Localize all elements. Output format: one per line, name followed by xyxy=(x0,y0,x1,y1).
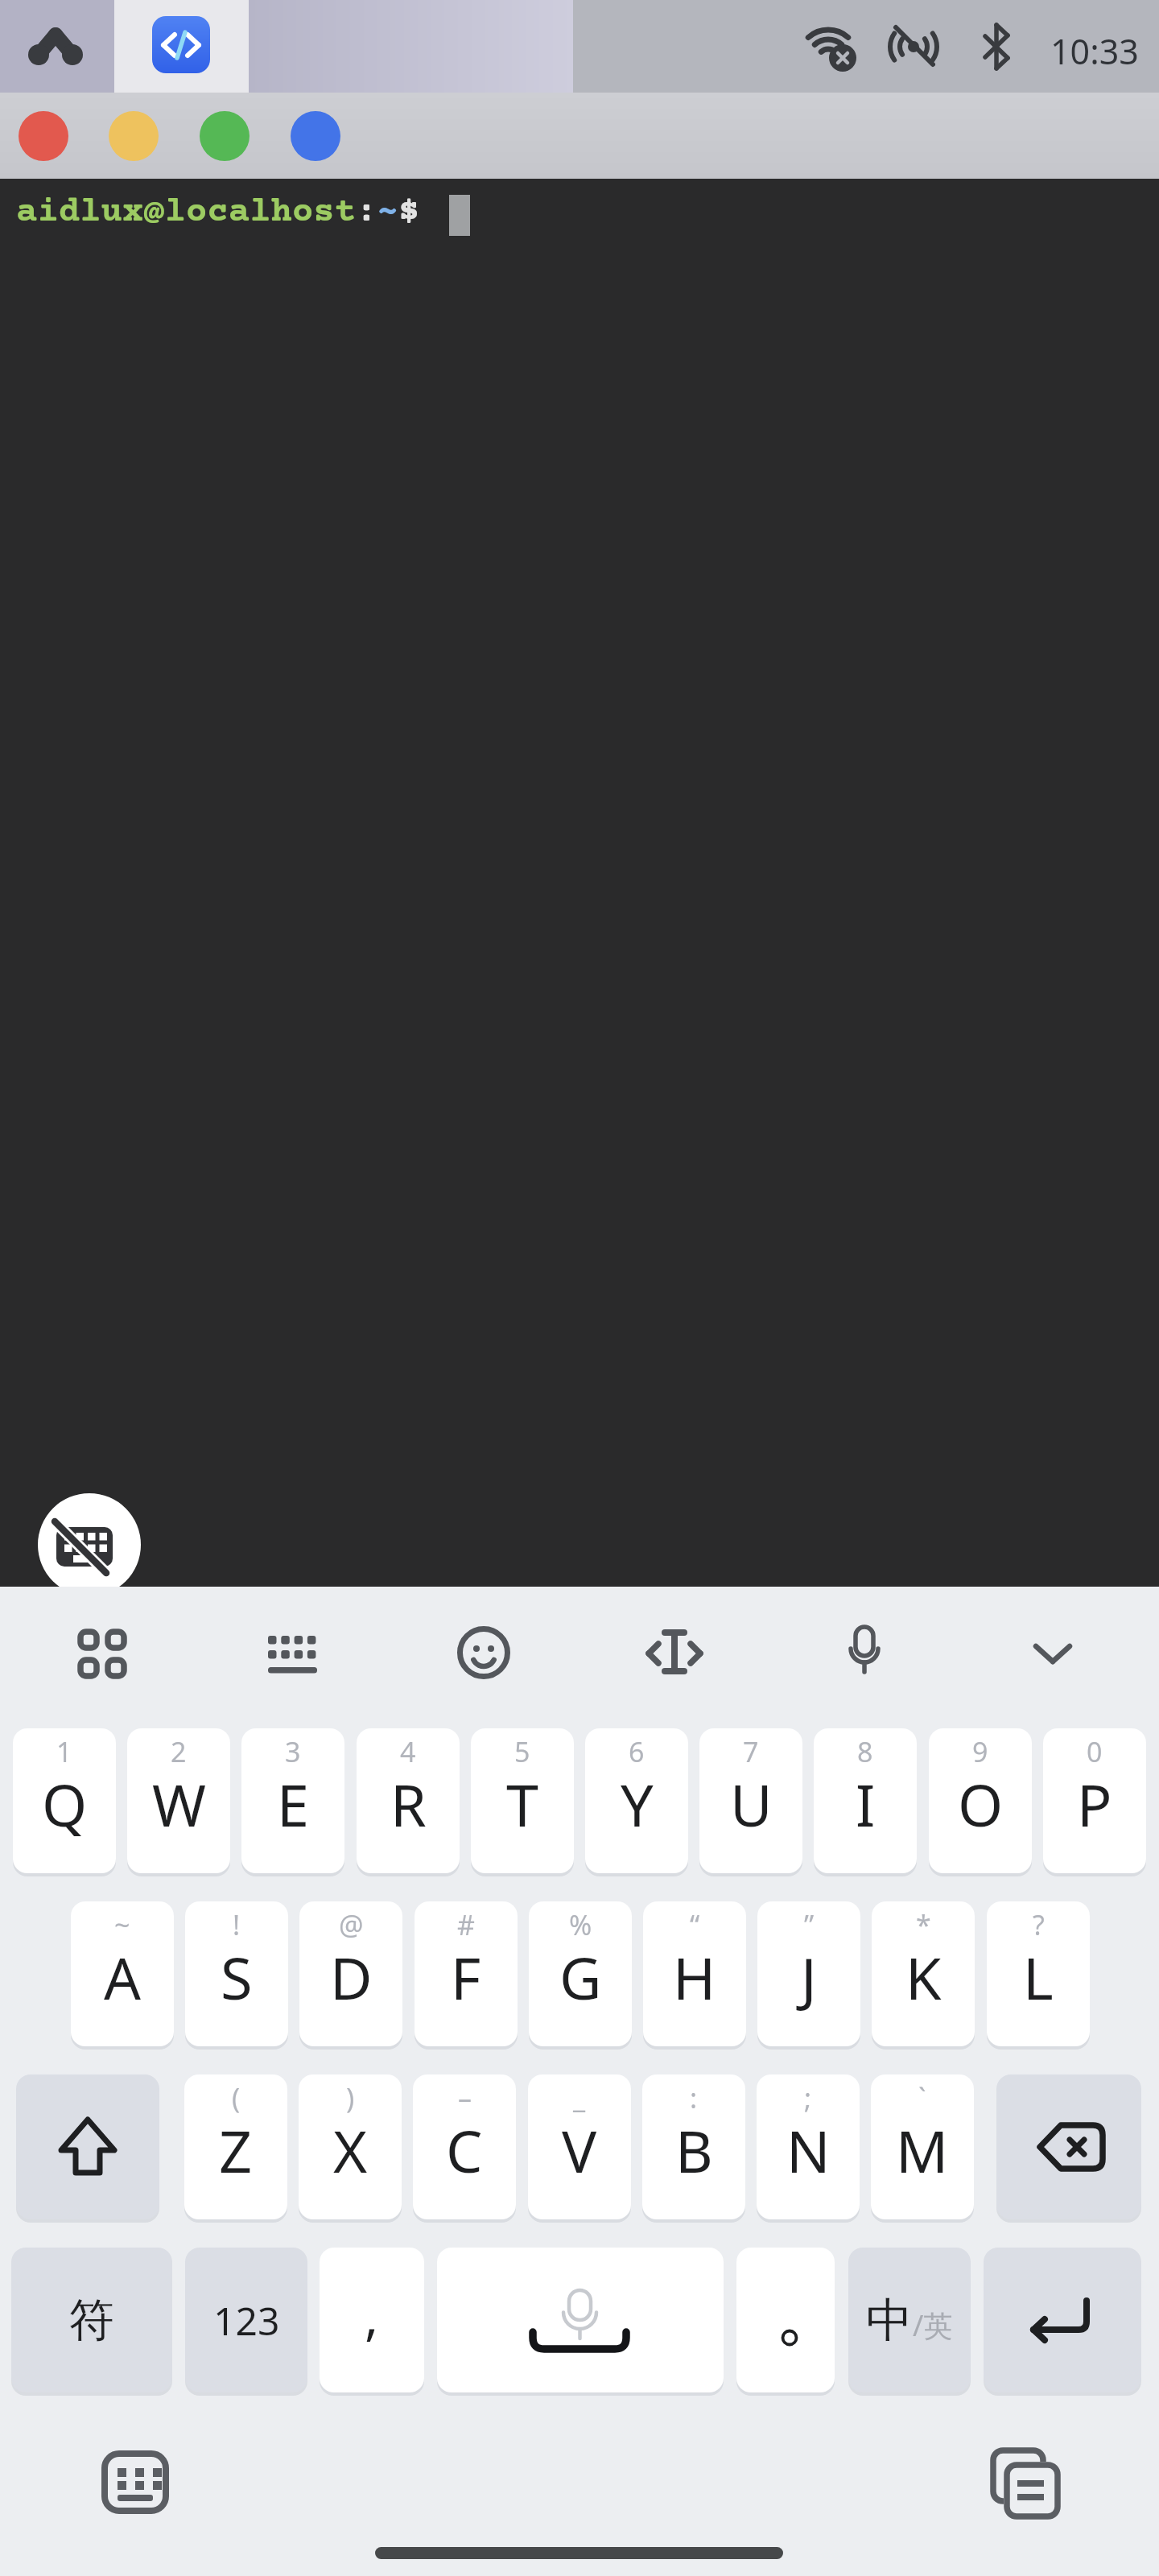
button[interactable] xyxy=(19,111,68,161)
staticText: 符 xyxy=(69,2292,114,2349)
staticText: 8 xyxy=(857,1733,873,1770)
button[interactable]: 8 xyxy=(814,1728,917,1873)
staticText: S xyxy=(221,1938,253,2017)
button[interactable]: 符 xyxy=(11,2248,172,2392)
button[interactable]: % xyxy=(529,1901,632,2046)
staticText: ; xyxy=(804,2079,812,2116)
button[interactable] xyxy=(457,1626,510,1679)
staticText: # xyxy=(457,1906,475,1943)
button[interactable]: 6 xyxy=(585,1728,688,1873)
button[interactable]: _ xyxy=(528,2074,631,2219)
staticText: * xyxy=(916,1906,931,1943)
button[interactable] xyxy=(152,16,210,73)
staticText: ? xyxy=(1033,1906,1045,1943)
button[interactable]: 4 xyxy=(357,1728,460,1873)
staticText: , xyxy=(365,2281,379,2351)
button[interactable]: # xyxy=(415,1901,518,2046)
staticText: 4 xyxy=(400,1733,416,1770)
staticText: ( xyxy=(232,2079,241,2116)
button[interactable] xyxy=(291,111,340,161)
staticText: ” xyxy=(804,1906,815,1943)
button[interactable]: * xyxy=(872,1901,975,2046)
button[interactable]: 中/英 xyxy=(848,2248,971,2392)
staticText: ! xyxy=(233,1906,241,1943)
staticText: _ xyxy=(573,2079,586,2116)
staticText: “ xyxy=(690,1906,700,1943)
staticText: M xyxy=(896,2111,949,2190)
button[interactable]: – xyxy=(413,2074,516,2219)
button[interactable]: 2 xyxy=(127,1728,230,1873)
staticText: 2 xyxy=(171,1733,187,1770)
button[interactable]: , xyxy=(320,2248,424,2392)
staticText: T xyxy=(506,1765,539,1843)
button[interactable] xyxy=(200,111,250,161)
staticText: B xyxy=(675,2111,713,2190)
button[interactable]: ? xyxy=(987,1901,1090,2046)
staticText: 5 xyxy=(514,1733,530,1770)
button[interactable]: : xyxy=(642,2074,745,2219)
button[interactable]: 5 xyxy=(471,1728,574,1873)
staticText: L xyxy=(1023,1938,1054,2017)
button[interactable]: 1 xyxy=(13,1728,116,1873)
button[interactable]: 0 xyxy=(1043,1728,1146,1873)
button[interactable]: ! xyxy=(185,1901,288,2046)
button[interactable]: ) xyxy=(299,2074,402,2219)
button[interactable] xyxy=(38,1493,141,1596)
button[interactable]: 3 xyxy=(241,1728,344,1873)
button[interactable] xyxy=(736,2248,835,2392)
staticText: K xyxy=(905,1938,942,2017)
staticText: @ xyxy=(339,1906,364,1943)
button[interactable]: ” xyxy=(757,1901,860,2046)
button[interactable]: ~ xyxy=(71,1901,174,2046)
staticText: I xyxy=(856,1765,876,1843)
staticText: 中/英 xyxy=(866,2291,953,2350)
button[interactable]: @ xyxy=(299,1901,402,2046)
button[interactable]: “ xyxy=(643,1901,746,2046)
staticText: W xyxy=(152,1765,206,1843)
staticText: H xyxy=(673,1938,716,2017)
button[interactable] xyxy=(645,1628,702,1676)
staticText: 9 xyxy=(972,1733,988,1770)
staticText: V xyxy=(562,2111,597,2190)
button[interactable] xyxy=(77,1629,127,1678)
staticText: Y xyxy=(621,1765,654,1843)
staticText: P xyxy=(1077,1765,1112,1843)
button[interactable] xyxy=(984,2248,1141,2392)
staticText: O xyxy=(958,1765,1004,1843)
button[interactable]: ` xyxy=(871,2074,974,2219)
button[interactable] xyxy=(843,1625,885,1678)
button[interactable] xyxy=(1034,1645,1071,1666)
staticText: – xyxy=(458,2079,472,2116)
button[interactable]: ( xyxy=(184,2074,287,2219)
button[interactable]: 123 xyxy=(185,2248,307,2392)
button[interactable] xyxy=(16,2074,159,2219)
staticText: 1 xyxy=(56,1733,72,1770)
staticText: ) xyxy=(346,2079,355,2116)
button[interactable] xyxy=(996,2074,1141,2219)
staticText: 10:33 xyxy=(1050,27,1139,75)
staticText: A xyxy=(104,1938,142,2017)
staticText: E xyxy=(277,1765,310,1843)
staticText: Q xyxy=(42,1765,88,1843)
button[interactable] xyxy=(990,2447,1059,2518)
staticText: ` xyxy=(918,2079,926,2116)
staticText: % xyxy=(569,1906,592,1943)
staticText: R xyxy=(390,1765,427,1843)
staticText: 123 xyxy=(213,2294,280,2347)
button[interactable] xyxy=(109,111,159,161)
staticText: ~ xyxy=(114,1906,130,1943)
staticText: aidlux@localhost:~$ xyxy=(16,193,420,233)
button[interactable]: 9 xyxy=(929,1728,1032,1873)
staticText: 6 xyxy=(629,1733,645,1770)
button[interactable] xyxy=(101,2450,169,2514)
staticText: 3 xyxy=(285,1733,301,1770)
staticText: 7 xyxy=(743,1733,759,1770)
button[interactable]: 7 xyxy=(699,1728,802,1873)
button[interactable] xyxy=(437,2248,724,2392)
staticText: N xyxy=(786,2111,831,2190)
staticText: C xyxy=(446,2111,483,2190)
staticText: J xyxy=(801,1938,817,2017)
staticText: U xyxy=(730,1765,773,1843)
button[interactable]: ; xyxy=(757,2074,860,2219)
button[interactable] xyxy=(268,1636,318,1674)
